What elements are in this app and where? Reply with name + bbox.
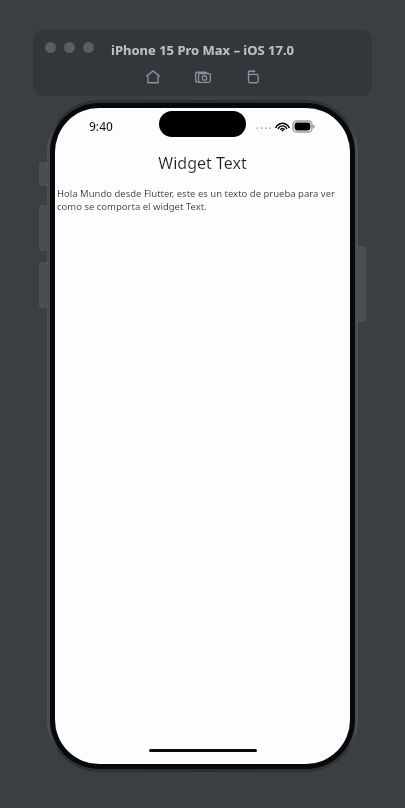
staticText: iPhone 15 Pro Max – iOS 17.0 [111,41,295,59]
staticText: Hola Mundo desde Flutter, este es un tex… [57,187,348,213]
button[interactable]: Minimize [64,42,75,53]
button[interactable]: Zoom [83,42,94,53]
button[interactable]: Record [242,66,264,88]
button[interactable]: Home [142,66,164,88]
staticText: 9:40 [89,118,113,134]
staticText: Widget Text [55,152,350,174]
button[interactable]: Screenshot [192,66,214,88]
button[interactable]: Close [45,42,56,53]
